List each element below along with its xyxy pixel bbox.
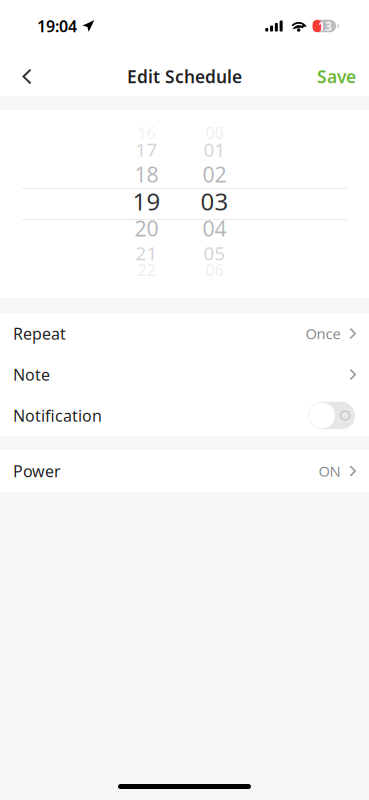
staticText: 16 (137, 122, 155, 143)
staticText: Notification (13, 405, 102, 426)
button[interactable]: Notification (0, 395, 369, 436)
staticText: 19 (132, 185, 160, 217)
staticText: ON (318, 461, 340, 481)
staticText: Save (317, 65, 356, 88)
staticText: 17 (135, 137, 157, 162)
staticText: 03 (200, 185, 228, 217)
staticText: 05 (203, 241, 225, 265)
button[interactable]: Save (305, 54, 356, 98)
button[interactable]: Back (7, 54, 47, 98)
staticText: 13 (318, 18, 332, 34)
button[interactable]: Repeat (0, 313, 369, 354)
staticText: Edit Schedule (127, 65, 242, 88)
staticText: 02 (202, 160, 226, 188)
staticText: Power (13, 460, 61, 482)
staticText: 18 (134, 160, 158, 188)
staticText: Once (305, 324, 340, 343)
button[interactable]: Power (0, 450, 369, 492)
staticText: Repeat (13, 323, 66, 344)
staticText: 19:04 (37, 15, 77, 37)
staticText: 06 (205, 259, 223, 280)
staticText: Note (13, 364, 50, 385)
staticText: 21 (135, 241, 157, 265)
staticText: 00 (205, 122, 223, 143)
button[interactable]: Note (0, 354, 369, 395)
staticText: 04 (202, 214, 226, 242)
staticText: 01 (203, 137, 225, 162)
staticText: 22 (137, 259, 155, 280)
staticText: 20 (134, 214, 158, 242)
